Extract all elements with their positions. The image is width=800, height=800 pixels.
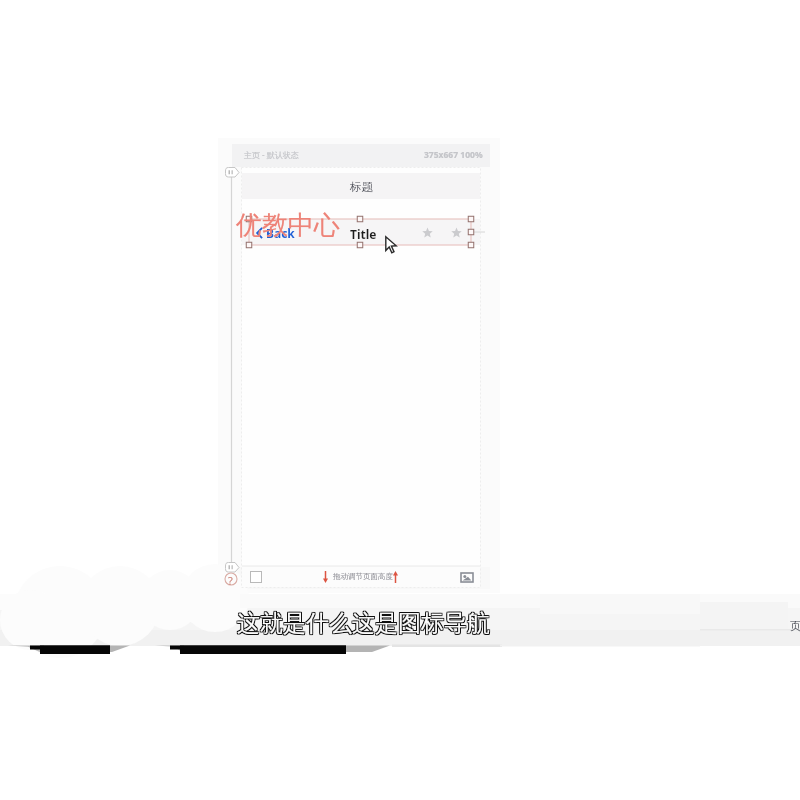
staticText: 这就是什么这是图标导航 (237, 609, 490, 638)
button[interactable]: Page image (461, 573, 473, 582)
staticText: 这就是什么这是图标导航 (236, 608, 489, 637)
button[interactable]: 标题 (242, 173, 480, 199)
staticText: 这就是什么这是图标导航 (237, 610, 490, 639)
staticText: Back (266, 225, 295, 241)
staticText: 375x667 100% (424, 149, 483, 161)
staticText: 优教中心 (236, 209, 340, 242)
button[interactable]: Back (242, 219, 480, 245)
staticText: 页 (790, 619, 800, 633)
staticText: 这就是什么这是图标导航 (236, 609, 489, 638)
staticText: 这就是什么这是图标导航 (237, 608, 490, 637)
staticText: 这就是什么这是图标导航 (238, 608, 491, 637)
button[interactable]: Select page (250, 571, 262, 583)
staticText: 主页 - 默认状态 (244, 149, 299, 160)
staticText: Title (350, 226, 377, 242)
staticText: 这就是什么这是图标导航 (236, 610, 489, 639)
staticText: 这就是什么这是图标导航 (238, 610, 491, 639)
staticText: 标题 (350, 180, 373, 194)
staticText: 这就是什么这是图标导航 (238, 609, 491, 638)
staticText: 拖动调节页面高度 (333, 572, 393, 581)
staticText: ? (228, 573, 233, 588)
